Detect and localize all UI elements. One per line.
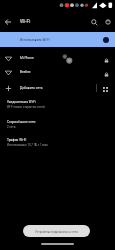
- button[interactable]: Scan QR code: [101, 85, 110, 94]
- button[interactable]: Beeline: [0, 65, 115, 79]
- staticText: Wi‑Fi поиск открытых сетей: [7, 105, 45, 108]
- button[interactable]: Трафик Wi‑Fi: [0, 138, 115, 152]
- staticText: Трафик Wi‑Fi: [7, 138, 27, 142]
- button[interactable]: Help: [102, 16, 114, 28]
- staticText: Сохранённые сети: [7, 120, 36, 124]
- staticText: Mi Phone: [20, 56, 34, 60]
- staticText: 2 сети: [7, 125, 16, 128]
- button[interactable]: Сохранённые сети: [0, 120, 115, 134]
- staticText: Добавить сеть: [20, 86, 43, 90]
- button[interactable]: Устройство подключено к сети: [23, 225, 90, 237]
- button[interactable]: Mi Phone: [0, 51, 115, 65]
- staticText: Использовано 10,7 ГБ с 1 мая: [7, 143, 48, 146]
- staticText: Wi‑Fi: [20, 19, 31, 25]
- staticText: Beeline: [20, 70, 31, 74]
- button[interactable]: Back: [2, 16, 14, 28]
- button[interactable]: Использовать Wi‑Fi: [0, 32, 115, 47]
- staticText: Устройство подключено к сети: [35, 230, 78, 233]
- button[interactable]: Уведомления Wi‑Fi: [0, 100, 115, 114]
- staticText: Использовать Wi‑Fi: [20, 38, 50, 42]
- staticText: Уведомления Wi‑Fi: [7, 100, 36, 104]
- button[interactable]: Добавить сеть: [0, 81, 115, 95]
- button[interactable]: Search: [88, 16, 100, 28]
